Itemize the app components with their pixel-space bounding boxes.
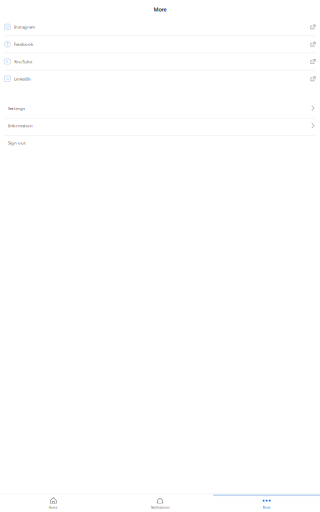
button[interactable]: f — [0, 36, 320, 52]
button[interactable]: Settings — [0, 101, 320, 118]
button[interactable]: Information — [0, 119, 320, 135]
button[interactable]: Home — [0, 496, 107, 512]
staticText: YouTube — [14, 59, 32, 64]
button[interactable]: More — [213, 496, 320, 512]
staticText: LinkedIn — [14, 76, 31, 82]
button[interactable]: Notifications — [107, 496, 213, 512]
staticText: More — [153, 6, 166, 13]
button[interactable]: Instagram — [0, 19, 320, 35]
staticText: Sign out — [8, 140, 26, 146]
staticText: Facebook — [14, 41, 33, 47]
staticText: Notifications — [151, 506, 169, 510]
button[interactable]: Sign out — [0, 136, 320, 152]
staticText: Instagram — [14, 24, 35, 30]
staticText: in — [6, 77, 9, 81]
staticText: Settings — [8, 105, 25, 111]
staticText: Home — [49, 506, 58, 510]
staticText: More — [263, 506, 271, 510]
button[interactable]: YouTube — [0, 53, 320, 70]
staticText: f — [6, 41, 8, 47]
staticText: Information — [8, 123, 33, 128]
button[interactable]: in — [0, 70, 320, 87]
